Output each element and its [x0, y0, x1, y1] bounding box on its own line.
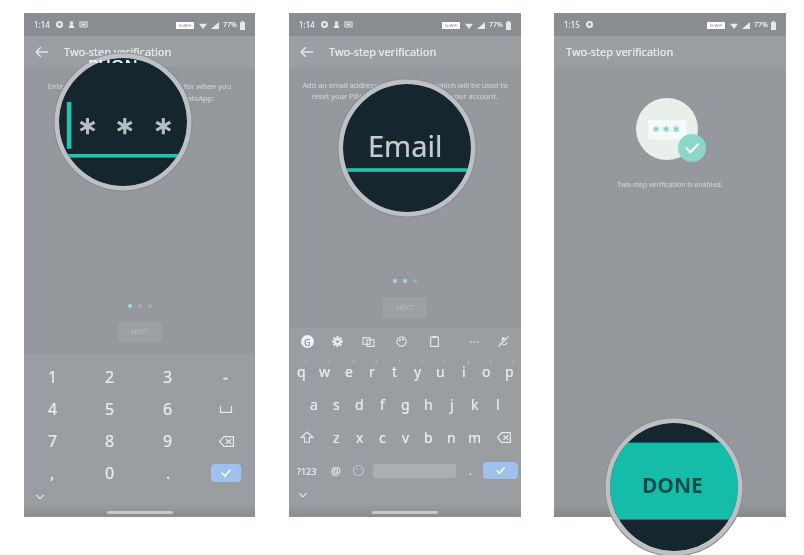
staticText: 9 — [163, 430, 173, 452]
staticText: NEXT — [396, 303, 414, 313]
staticText: Two-step verification is enabled. — [554, 180, 786, 190]
staticText: k — [471, 395, 479, 414]
staticText: 9 — [489, 359, 492, 366]
button[interactable]: l — [486, 388, 509, 421]
staticText: 2 — [105, 366, 115, 388]
button[interactable]: d — [348, 388, 371, 421]
button[interactable]: t — [383, 355, 406, 388]
button[interactable]: 9 — [139, 425, 197, 457]
button[interactable]: Settings — [332, 336, 343, 347]
button[interactable]: q — [289, 355, 313, 388]
staticText: ?123 — [297, 465, 317, 477]
staticText: Two-step verification — [566, 44, 674, 59]
button[interactable]: i — [452, 355, 475, 388]
staticText: j — [450, 395, 454, 414]
button[interactable]: a — [302, 388, 325, 421]
button[interactable]: . — [139, 457, 197, 489]
button[interactable]: Enter — [483, 462, 518, 479]
button[interactable]: m — [463, 421, 486, 454]
button[interactable]: Translate — [363, 336, 374, 347]
staticText: DONE — [642, 471, 703, 500]
button[interactable]: e — [337, 355, 360, 388]
staticText: r — [369, 362, 375, 381]
button[interactable]: 1 — [24, 361, 81, 393]
button[interactable]: Hide keyboard — [297, 489, 309, 501]
button[interactable]: Hide keypad — [34, 491, 46, 503]
button[interactable]: k — [463, 388, 486, 421]
button[interactable]: Backspace — [486, 421, 521, 454]
button[interactable]: c — [371, 421, 394, 454]
staticText: a — [310, 395, 318, 414]
button[interactable]: , — [24, 457, 81, 489]
button[interactable]: j — [440, 388, 463, 421]
button[interactable]: v — [394, 421, 417, 454]
button[interactable]: Voice input off — [498, 336, 509, 347]
button[interactable]: b — [417, 421, 440, 454]
staticText: 2 — [328, 359, 331, 366]
staticText: i — [462, 362, 466, 381]
button[interactable]: - — [197, 361, 255, 393]
staticText: y — [414, 362, 422, 381]
button[interactable]: Enter — [197, 457, 255, 489]
button[interactable]: s — [325, 388, 348, 421]
button[interactable]: g — [394, 388, 417, 421]
staticText: 7 — [48, 430, 58, 452]
button[interactable]: Stickers — [396, 336, 407, 347]
staticText: 1:14 — [299, 19, 315, 30]
button[interactable]: z — [325, 421, 348, 454]
button[interactable]: h — [417, 388, 440, 421]
staticText: v — [402, 428, 410, 447]
button[interactable]: @ — [325, 454, 347, 487]
button[interactable]: 4 — [24, 393, 81, 425]
staticText: o — [482, 362, 491, 381]
button[interactable]: . — [460, 454, 480, 487]
staticText: 5 — [105, 398, 115, 420]
staticText: 1:15 — [564, 19, 580, 30]
button[interactable]: n — [440, 421, 463, 454]
staticText: 1 — [304, 359, 307, 366]
button[interactable]: 0 — [81, 457, 139, 489]
staticText: u — [436, 362, 445, 381]
button[interactable]: o — [475, 355, 498, 388]
button[interactable]: y — [406, 355, 429, 388]
staticText: l — [496, 395, 500, 414]
button[interactable]: 3 — [139, 361, 197, 393]
staticText: 4 — [375, 359, 378, 366]
staticText: 6 — [163, 398, 173, 420]
button[interactable]: ?123 — [289, 454, 325, 487]
button[interactable]: x — [348, 421, 371, 454]
button[interactable]: 5 — [81, 393, 139, 425]
staticText: e — [345, 362, 353, 381]
button[interactable]: Shift — [289, 421, 325, 454]
staticText: 6 — [421, 359, 424, 366]
button[interactable]: Backspace — [197, 425, 255, 457]
button[interactable]: Back — [297, 42, 317, 62]
staticText: @ — [331, 463, 341, 478]
staticText: Enter a hint that you will be reminded f… — [30, 81, 249, 103]
button[interactable] — [197, 393, 255, 425]
staticText: Email — [368, 126, 443, 165]
button[interactable]: 8 — [81, 425, 139, 457]
staticText: x — [356, 428, 364, 447]
button[interactable]: p — [498, 355, 521, 388]
staticText: m — [468, 428, 482, 447]
button[interactable]: Google — [301, 335, 314, 348]
button[interactable]: NEXT — [118, 322, 162, 342]
button[interactable]: 6 — [139, 393, 197, 425]
button[interactable]: w — [313, 355, 337, 388]
staticText: PHON — [88, 56, 138, 63]
staticText: . — [469, 463, 472, 478]
button[interactable]: f — [371, 388, 394, 421]
button[interactable]: 2 — [81, 361, 139, 393]
button[interactable]: r — [360, 355, 383, 388]
button[interactable]: More — [469, 336, 480, 347]
button[interactable]: NEXT — [383, 297, 427, 318]
button[interactable]: u — [429, 355, 452, 388]
button[interactable]: Back — [32, 42, 52, 62]
button[interactable]: Emoji — [347, 454, 369, 487]
staticText: 77% — [223, 20, 237, 30]
staticText: 3 — [163, 366, 173, 388]
button[interactable]: 7 — [24, 425, 81, 457]
button[interactable]: Clipboard — [429, 336, 440, 347]
